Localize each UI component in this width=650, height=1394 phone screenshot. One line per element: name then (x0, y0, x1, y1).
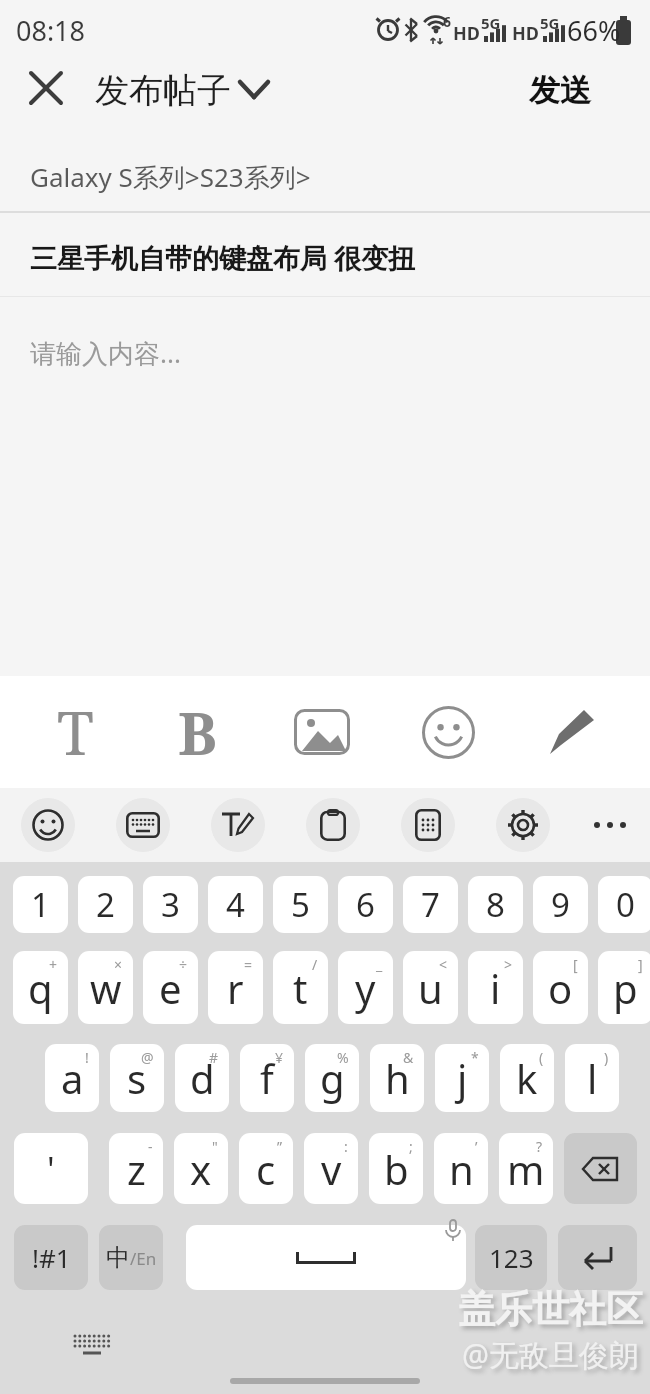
button[interactable]: s (110, 1044, 164, 1112)
button[interactable] (186, 1225, 466, 1290)
staticText: 6 (443, 12, 452, 31)
button[interactable]: n (434, 1133, 488, 1204)
button[interactable]: b (369, 1133, 423, 1204)
staticText: u (418, 961, 443, 1015)
staticText: % (337, 1048, 349, 1067)
button[interactable]: q (13, 951, 68, 1024)
button[interactable]: a (45, 1044, 99, 1112)
button[interactable]: 中 (99, 1225, 163, 1290)
staticText: v (321, 1142, 342, 1196)
button[interactable]: B (142, 676, 252, 788)
button[interactable] (393, 676, 503, 788)
button[interactable]: 1 (13, 876, 68, 933)
button[interactable] (21, 798, 75, 852)
button[interactable]: u (403, 951, 458, 1024)
staticText: 0 (616, 882, 635, 927)
button[interactable]: j (435, 1044, 489, 1112)
button[interactable]: h (370, 1044, 424, 1112)
staticText: & (403, 1048, 414, 1067)
staticText: b (384, 1142, 409, 1196)
staticText: HD (512, 21, 539, 46)
staticText: 3 (161, 882, 180, 927)
button[interactable]: 发送 (510, 56, 610, 124)
button[interactable]: o (533, 951, 588, 1024)
button[interactable]: k (500, 1044, 554, 1112)
staticText: y (355, 961, 376, 1015)
button[interactable]: v (304, 1133, 358, 1204)
button[interactable] (401, 798, 455, 852)
button[interactable]: 9 (533, 876, 588, 933)
button[interactable]: T (20, 676, 130, 788)
button[interactable] (306, 798, 360, 852)
button[interactable]: 3 (143, 876, 198, 933)
button[interactable]: 三星手机自带的键盘布局 很变扭 (0, 213, 650, 295)
button[interactable]: g (305, 1044, 359, 1112)
button[interactable]: i (468, 951, 523, 1024)
button[interactable]: 2 (78, 876, 133, 933)
button[interactable]: r (208, 951, 263, 1024)
button[interactable] (116, 798, 170, 852)
button[interactable]: l (565, 1044, 619, 1112)
button[interactable]: 0 (598, 876, 650, 933)
button[interactable]: 4 (208, 876, 263, 933)
button[interactable]: m (499, 1133, 553, 1204)
staticText: h (385, 1051, 410, 1105)
button[interactable] (558, 1225, 637, 1290)
button[interactable] (22, 64, 70, 112)
button[interactable]: f (240, 1044, 294, 1112)
button[interactable]: 7 (403, 876, 458, 933)
staticText: 发布帖子 (95, 69, 231, 112)
staticText: " (212, 1137, 218, 1156)
button[interactable] (267, 676, 377, 788)
staticText: /En (130, 1247, 157, 1270)
staticText: 123 (489, 1240, 534, 1275)
button[interactable]: 123 (475, 1225, 547, 1290)
button[interactable]: e (143, 951, 198, 1024)
button[interactable]: Galaxy S系列>S23系列> (0, 142, 650, 210)
button[interactable] (517, 676, 627, 788)
staticText: ÷ (179, 955, 188, 974)
staticText: ? (536, 1137, 543, 1156)
button[interactable]: p (598, 951, 650, 1024)
staticText: Galaxy S系列>S23系列> (30, 159, 311, 195)
button[interactable]: !#1 (14, 1225, 88, 1290)
staticText: i (490, 961, 501, 1015)
staticText: 盖乐世社区 (458, 1286, 643, 1333)
button[interactable]: ' (14, 1133, 88, 1204)
staticText: [ (573, 955, 578, 974)
staticText: 2 (96, 882, 115, 927)
staticText: 8 (486, 882, 505, 927)
button[interactable]: y (338, 951, 393, 1024)
staticText: j (457, 1051, 468, 1105)
button[interactable] (496, 798, 550, 852)
staticText: t (293, 961, 308, 1015)
staticText: HD (453, 21, 480, 46)
staticText: T (57, 691, 94, 773)
staticText: l (587, 1051, 598, 1105)
button[interactable] (564, 1133, 637, 1204)
button[interactable]: d (175, 1044, 229, 1112)
staticText: 1 (31, 882, 50, 927)
button[interactable] (583, 798, 637, 852)
button[interactable]: 请输入内容... (0, 297, 650, 407)
staticText: 6 (356, 882, 375, 927)
button[interactable]: 5 (273, 876, 328, 933)
staticText: d (190, 1051, 215, 1105)
button[interactable]: 6 (338, 876, 393, 933)
button[interactable]: w (78, 951, 133, 1024)
staticText: * (471, 1048, 479, 1067)
staticText: > (504, 955, 513, 974)
button[interactable]: x (174, 1133, 228, 1204)
button[interactable]: 发布帖子 (95, 56, 269, 124)
button[interactable]: t (273, 951, 328, 1024)
button[interactable] (60, 1324, 124, 1368)
staticText: 9 (551, 882, 570, 927)
button[interactable]: 8 (468, 876, 523, 933)
staticText: !#1 (32, 1240, 71, 1275)
staticText: ' (47, 1146, 55, 1192)
staticText: / (312, 955, 318, 974)
button[interactable]: c (239, 1133, 293, 1204)
button[interactable] (211, 798, 265, 852)
button[interactable]: z (109, 1133, 163, 1204)
staticText: 66% (567, 12, 621, 49)
